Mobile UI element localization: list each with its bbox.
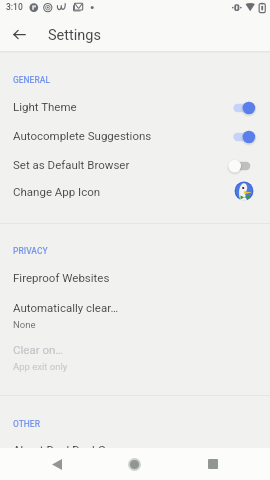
staticText: GENERAL (13, 75, 51, 85)
button[interactable]: Clear on… (0, 340, 270, 374)
button[interactable]: Autocomplete Suggestions (0, 121, 270, 149)
button[interactable]: Set as Default Browser (0, 150, 270, 178)
button[interactable]: Change App Icon (0, 177, 270, 205)
staticText: None (13, 319, 36, 330)
staticText: OTHER (13, 419, 41, 429)
staticText: PRIVACY (13, 246, 48, 256)
staticText: About DuckDuckGo (13, 443, 113, 456)
button[interactable]: Automatically clear… (0, 298, 270, 332)
staticText: Light Theme (13, 100, 231, 113)
button[interactable]: About DuckDuckGo (0, 435, 270, 463)
staticText: Clear on… (13, 343, 63, 356)
button[interactable]: Home (118, 450, 151, 478)
button[interactable]: Light Theme (0, 92, 270, 120)
staticText: 3:10 (6, 2, 23, 12)
staticText: Set as Default Browser (13, 158, 231, 171)
staticText: Fireproof Websites (13, 271, 110, 284)
staticText: Autocomplete Suggestions (13, 129, 231, 142)
staticText: App exit only (13, 361, 68, 372)
button[interactable]: Recent apps (196, 450, 229, 478)
button[interactable]: Fireproof Websites (0, 263, 270, 291)
button[interactable]: Back (40, 450, 73, 478)
button[interactable]: Back (5, 20, 34, 49)
staticText: Change App Icon (13, 185, 234, 198)
staticText: Settings (48, 27, 101, 44)
staticText: Automatically clear… (13, 301, 119, 314)
